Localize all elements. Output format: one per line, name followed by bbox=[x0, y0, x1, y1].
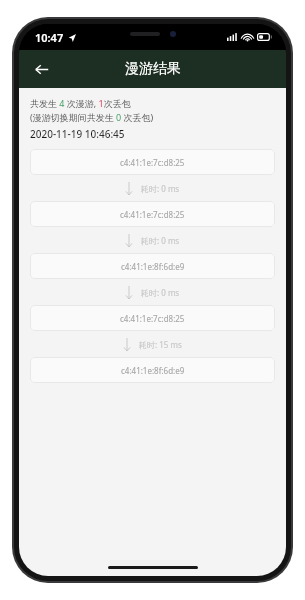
staticText: 漫游结果 bbox=[125, 60, 181, 78]
staticText: 耗时: 0 ms bbox=[141, 235, 180, 246]
staticText: c4:41:1e:7c:d8:25 bbox=[120, 313, 185, 324]
staticText: (漫游切换期间共发生 0 次丢包) bbox=[30, 111, 154, 123]
staticText: c4:41:1e:7c:d8:25 bbox=[120, 157, 185, 168]
staticText: 耗时: 0 ms bbox=[141, 183, 180, 194]
button[interactable]: c4:41:1e:7c:d8:25 bbox=[30, 201, 275, 227]
staticText: 耗时: 15 ms bbox=[139, 339, 182, 350]
button[interactable]: c4:41:1e:7c:d8:25 bbox=[30, 149, 275, 175]
staticText: 共发生 4 次漫游, 1次丢包 bbox=[30, 97, 131, 109]
staticText: c4:41:1e:7c:d8:25 bbox=[120, 209, 185, 220]
button[interactable]: c4:41:1e:7c:d8:25 bbox=[30, 305, 275, 331]
staticText: c4:41:1e:8f:6d:e9 bbox=[121, 365, 185, 376]
button[interactable]: c4:41:1e:8f:6d:e9 bbox=[30, 253, 275, 279]
button[interactable]: Back bbox=[25, 53, 57, 85]
staticText: 2020-11-19 10:46:45 bbox=[30, 127, 125, 141]
staticText: 10:47 bbox=[35, 30, 64, 45]
staticText: 耗时: 0 ms bbox=[141, 287, 180, 298]
button[interactable]: c4:41:1e:8f:6d:e9 bbox=[30, 357, 275, 383]
staticText: c4:41:1e:8f:6d:e9 bbox=[121, 261, 185, 272]
